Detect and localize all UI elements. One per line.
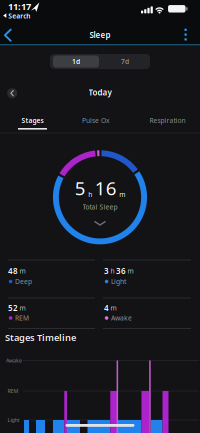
button[interactable]: Respiration [149, 116, 185, 125]
staticText: Pulse Ox [82, 116, 110, 125]
staticText: Light [7, 416, 19, 424]
staticText: m [127, 266, 133, 275]
staticText: 5 [75, 176, 86, 200]
staticText: 11:17 [8, 0, 31, 13]
staticText: 48 [8, 266, 18, 276]
staticText: Sleep [89, 30, 110, 40]
button[interactable] [2, 29, 14, 41]
staticText: 7d [121, 57, 129, 66]
staticText: m [119, 190, 125, 199]
button[interactable] [94, 221, 106, 226]
staticText: Stages [21, 116, 43, 125]
staticText: Stages Timeline [5, 331, 76, 344]
staticText: m [19, 266, 25, 275]
staticText: REM [7, 387, 18, 395]
button[interactable]: Pulse Ox [82, 116, 110, 125]
staticText: 1d [72, 57, 80, 66]
button[interactable] [184, 29, 187, 41]
staticText: h [110, 266, 114, 275]
staticText: Awake [6, 357, 22, 364]
staticText: m [110, 303, 116, 312]
staticText: Respiration [149, 116, 185, 125]
staticText: 36 [116, 266, 126, 276]
staticText: Total Sleep [82, 203, 117, 211]
staticText: Awake [111, 314, 132, 322]
button[interactable] [7, 88, 17, 98]
button[interactable]: 7d [102, 55, 148, 67]
staticText: Search [8, 11, 30, 20]
staticText: 52 [8, 303, 18, 313]
staticText: 3 [104, 266, 109, 276]
button[interactable]: Stages [21, 116, 43, 125]
staticText: Light [111, 277, 126, 286]
staticText: 4 [104, 303, 109, 313]
staticText: m [19, 303, 25, 312]
staticText: h [88, 190, 92, 199]
button[interactable]: Search [3, 11, 30, 20]
staticText: 16 [95, 176, 117, 200]
staticText: Today [88, 87, 111, 98]
staticText: REM [15, 314, 29, 322]
button[interactable]: 1d [53, 55, 99, 67]
staticText: Deep [15, 277, 32, 286]
